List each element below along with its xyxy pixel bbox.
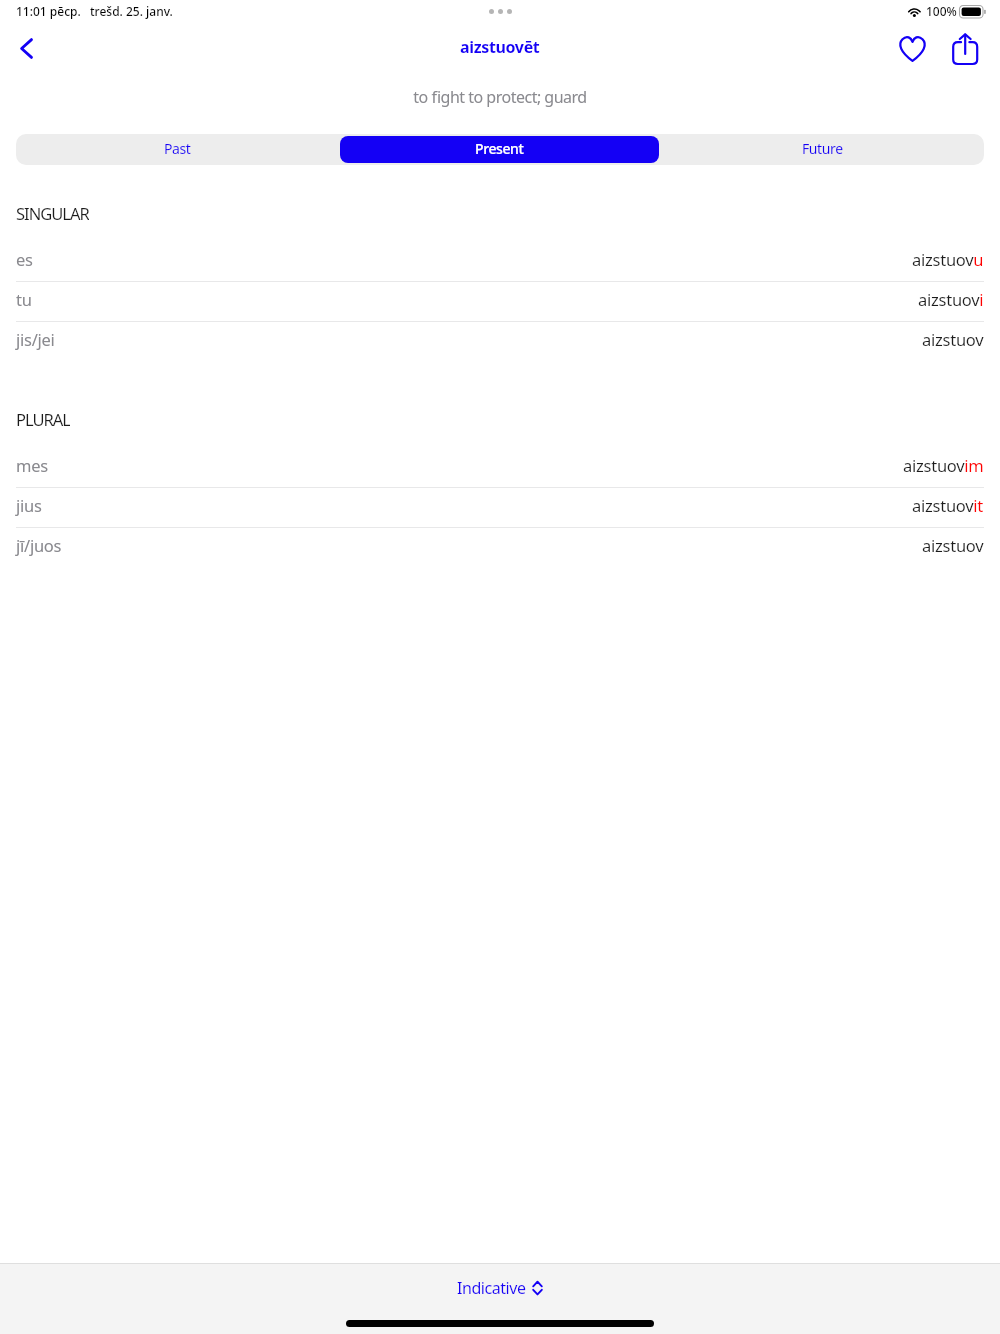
button[interactable]: jius [0, 488, 1000, 528]
button[interactable]: Future [661, 134, 984, 165]
staticText: 100% [926, 3, 957, 19]
staticText: aizstuovēt [460, 36, 540, 58]
staticText: aizstuovu [912, 248, 984, 270]
staticText: es [16, 248, 33, 270]
staticText: 11:01 pēcp. [16, 3, 81, 19]
staticText: mes [16, 454, 48, 476]
staticText: aizstuovim [903, 454, 984, 476]
staticText: Present [475, 139, 524, 158]
button[interactable]: Favorite [890, 27, 934, 71]
staticText: jī/juos [16, 534, 62, 556]
button[interactable]: es [0, 242, 1000, 282]
staticText: Indicative [457, 1277, 526, 1299]
staticText: to fight to protect; guard [413, 86, 587, 108]
button[interactable]: Indicative [447, 1273, 553, 1303]
staticText: Future [802, 139, 843, 158]
button[interactable]: tu [0, 282, 1000, 322]
button[interactable]: Share [943, 27, 987, 71]
button[interactable]: Present [338, 134, 661, 165]
button[interactable]: Back [4, 26, 48, 70]
staticText: aizstuov [922, 534, 984, 556]
staticText: PLURAL [16, 408, 70, 426]
staticText: aizstuovi [918, 288, 984, 310]
staticText: SINGULAR [16, 202, 89, 220]
staticText: jis/jei [16, 328, 55, 350]
staticText: aizstuovit [912, 494, 984, 516]
button[interactable]: mes [0, 448, 1000, 488]
button[interactable]: jis/jei [0, 322, 1000, 362]
button[interactable]: jī/juos [0, 528, 1000, 568]
staticText: jius [16, 494, 42, 516]
button[interactable]: Past [16, 134, 338, 165]
staticText: aizstuov [922, 328, 984, 350]
staticText: trešd. 25. janv. [90, 3, 173, 19]
staticText: tu [16, 288, 32, 310]
staticText: Past [164, 139, 191, 158]
